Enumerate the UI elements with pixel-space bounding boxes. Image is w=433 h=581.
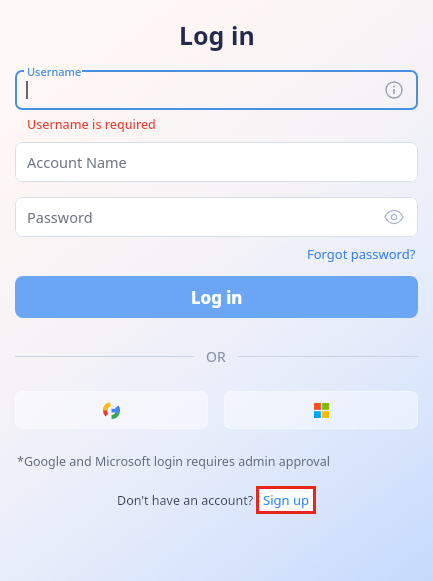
staticText: Forgot password? [307,245,416,263]
staticText: Log in [179,18,255,52]
staticText: Don't have an account? [117,492,254,509]
staticText: Sign up [263,491,309,509]
staticText: OR [206,347,226,366]
button[interactable]: Sign in with Microsoft [224,391,418,429]
button[interactable]: Password [15,197,418,237]
button[interactable]: Sign in with Google [15,391,208,429]
staticText: Account Name [27,152,127,172]
button[interactable]: Account Name [15,142,418,182]
button[interactable]: Show password [383,206,405,228]
staticText: Password [27,207,93,227]
staticText: Username is required [27,116,156,133]
button[interactable]: Log in [15,276,418,318]
staticText: Username [27,64,82,79]
button[interactable]: Sign up [256,486,316,514]
staticText: Log in [191,286,243,309]
button[interactable]: Forgot password? [305,243,418,265]
staticText: *Google and Microsoft login requires adm… [17,453,330,470]
